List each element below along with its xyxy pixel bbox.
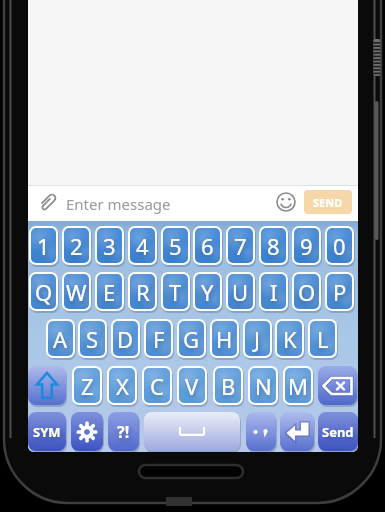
button[interactable]	[318, 366, 357, 405]
staticText: 9	[300, 231, 313, 261]
button[interactable]: T	[161, 272, 190, 311]
button[interactable]: 0	[325, 226, 354, 265]
button[interactable]: D	[111, 319, 140, 358]
staticText: 8	[267, 231, 280, 261]
button[interactable]: 1	[29, 226, 58, 265]
staticText: S	[86, 324, 99, 354]
button[interactable]: Y	[193, 272, 222, 311]
button[interactable]: L	[308, 319, 337, 358]
button[interactable]	[28, 186, 358, 221]
button[interactable]: 3	[95, 226, 124, 265]
staticText: O	[298, 277, 316, 307]
button[interactable]	[246, 412, 276, 451]
staticText: V	[185, 371, 199, 401]
button[interactable]: H	[210, 319, 239, 358]
staticText: X	[116, 371, 129, 401]
button[interactable]: Z	[72, 366, 102, 405]
button[interactable]: W	[62, 272, 91, 311]
staticText: 1	[37, 231, 50, 261]
staticText: ?!	[117, 421, 130, 443]
button[interactable]: Q	[29, 272, 58, 311]
staticText: 7	[234, 231, 247, 261]
staticText: Send	[322, 423, 354, 441]
button[interactable]	[28, 366, 66, 405]
button[interactable]: 8	[259, 226, 288, 265]
staticText: 6	[201, 231, 214, 261]
staticText: W	[66, 277, 87, 307]
staticText: SEND	[313, 195, 343, 210]
button[interactable]: J	[243, 319, 272, 358]
button[interactable]: M	[283, 366, 313, 405]
button[interactable]: X	[107, 366, 137, 405]
button[interactable]: I	[259, 272, 288, 311]
button[interactable]: SEND	[304, 190, 352, 214]
staticText: SYM	[33, 423, 61, 441]
button[interactable]: F	[144, 319, 173, 358]
staticText: M	[288, 371, 308, 401]
button[interactable]: 4	[128, 226, 157, 265]
staticText: N	[255, 371, 272, 401]
staticText: 3	[103, 231, 116, 261]
button[interactable]	[276, 192, 296, 212]
button[interactable]: S	[78, 319, 107, 358]
staticText: P	[333, 277, 347, 307]
staticText: C	[150, 371, 164, 401]
button[interactable]: 9	[292, 226, 321, 265]
staticText: 4	[136, 231, 149, 261]
staticText: G	[183, 324, 200, 354]
button[interactable]: SYM	[28, 412, 66, 451]
staticText: D	[117, 324, 134, 354]
staticText: Q	[35, 277, 53, 307]
staticText: I	[270, 277, 278, 307]
staticText: A	[53, 324, 68, 354]
staticText: Enter message	[66, 194, 171, 214]
staticText: Y	[201, 277, 214, 307]
staticText: E	[103, 277, 116, 307]
button[interactable]: B	[213, 366, 243, 405]
button[interactable]: 5	[161, 226, 190, 265]
button[interactable]	[280, 412, 314, 451]
button[interactable]: Send	[318, 412, 358, 451]
staticText: Z	[81, 371, 94, 401]
button[interactable]: E	[95, 272, 124, 311]
staticText: T	[169, 277, 182, 307]
button[interactable]: V	[177, 366, 207, 405]
staticText: 0	[333, 231, 346, 261]
button[interactable]: K	[275, 319, 304, 358]
button[interactable]: C	[142, 366, 172, 405]
button[interactable]: U	[226, 272, 255, 311]
staticText: J	[254, 324, 261, 354]
staticText: R	[136, 277, 150, 307]
button[interactable]: 2	[62, 226, 91, 265]
staticText: 2	[70, 231, 83, 261]
button[interactable]: P	[325, 272, 354, 311]
button[interactable]	[71, 412, 103, 451]
staticText: L	[317, 324, 329, 354]
staticText: K	[283, 324, 297, 354]
staticText: F	[153, 324, 165, 354]
button[interactable]: 6	[193, 226, 222, 265]
button[interactable]: R	[128, 272, 157, 311]
staticText: 5	[169, 231, 182, 261]
staticText: H	[216, 324, 233, 354]
button[interactable]: N	[248, 366, 278, 405]
button[interactable]: ?!	[108, 412, 139, 451]
button[interactable]: G	[177, 319, 206, 358]
button[interactable]: O	[292, 272, 321, 311]
button[interactable]	[144, 412, 240, 451]
staticText: B	[221, 371, 236, 401]
button[interactable]: 7	[226, 226, 255, 265]
staticText: U	[232, 277, 249, 307]
button[interactable]: A	[46, 319, 75, 358]
